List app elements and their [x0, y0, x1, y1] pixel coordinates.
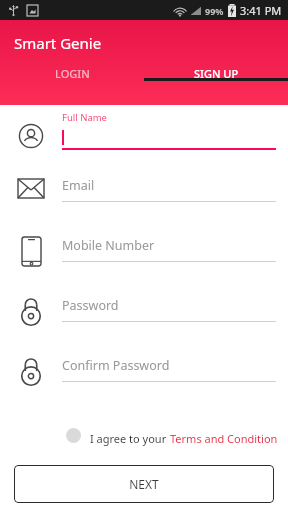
other: Password [20, 297, 42, 325]
button[interactable]: SIGN UP [144, 66, 288, 81]
button[interactable]: NEXT [14, 465, 274, 503]
staticText: SIGN UP [194, 66, 239, 81]
button[interactable]: Email [0, 171, 288, 231]
staticText: Password [62, 297, 119, 314]
staticText: Mobile Number [62, 237, 155, 254]
other: Full name [18, 123, 44, 149]
other: Password [20, 357, 42, 385]
staticText: 99% [205, 5, 224, 17]
button[interactable]: Password [0, 291, 288, 351]
staticText: Confirm Password [62, 357, 170, 374]
button[interactable]: LOGIN [0, 66, 144, 81]
staticText: I agree to your [90, 431, 170, 446]
staticText: Smart Genie [14, 33, 102, 53]
other: Email [18, 179, 44, 198]
button[interactable]: Mobile number [0, 231, 288, 291]
staticText: Email [62, 177, 95, 194]
staticText: LOGIN [55, 66, 90, 81]
staticText: NEXT [129, 476, 159, 492]
staticText: 3:41 PM [240, 3, 282, 18]
button[interactable]: I agree to your [0, 411, 288, 445]
staticText: Full Name [62, 111, 107, 124]
staticText: Terms and Condition [170, 431, 278, 446]
other: Mobile number [22, 237, 41, 266]
button[interactable]: Full name [0, 105, 288, 171]
button[interactable]: Password [0, 351, 288, 411]
